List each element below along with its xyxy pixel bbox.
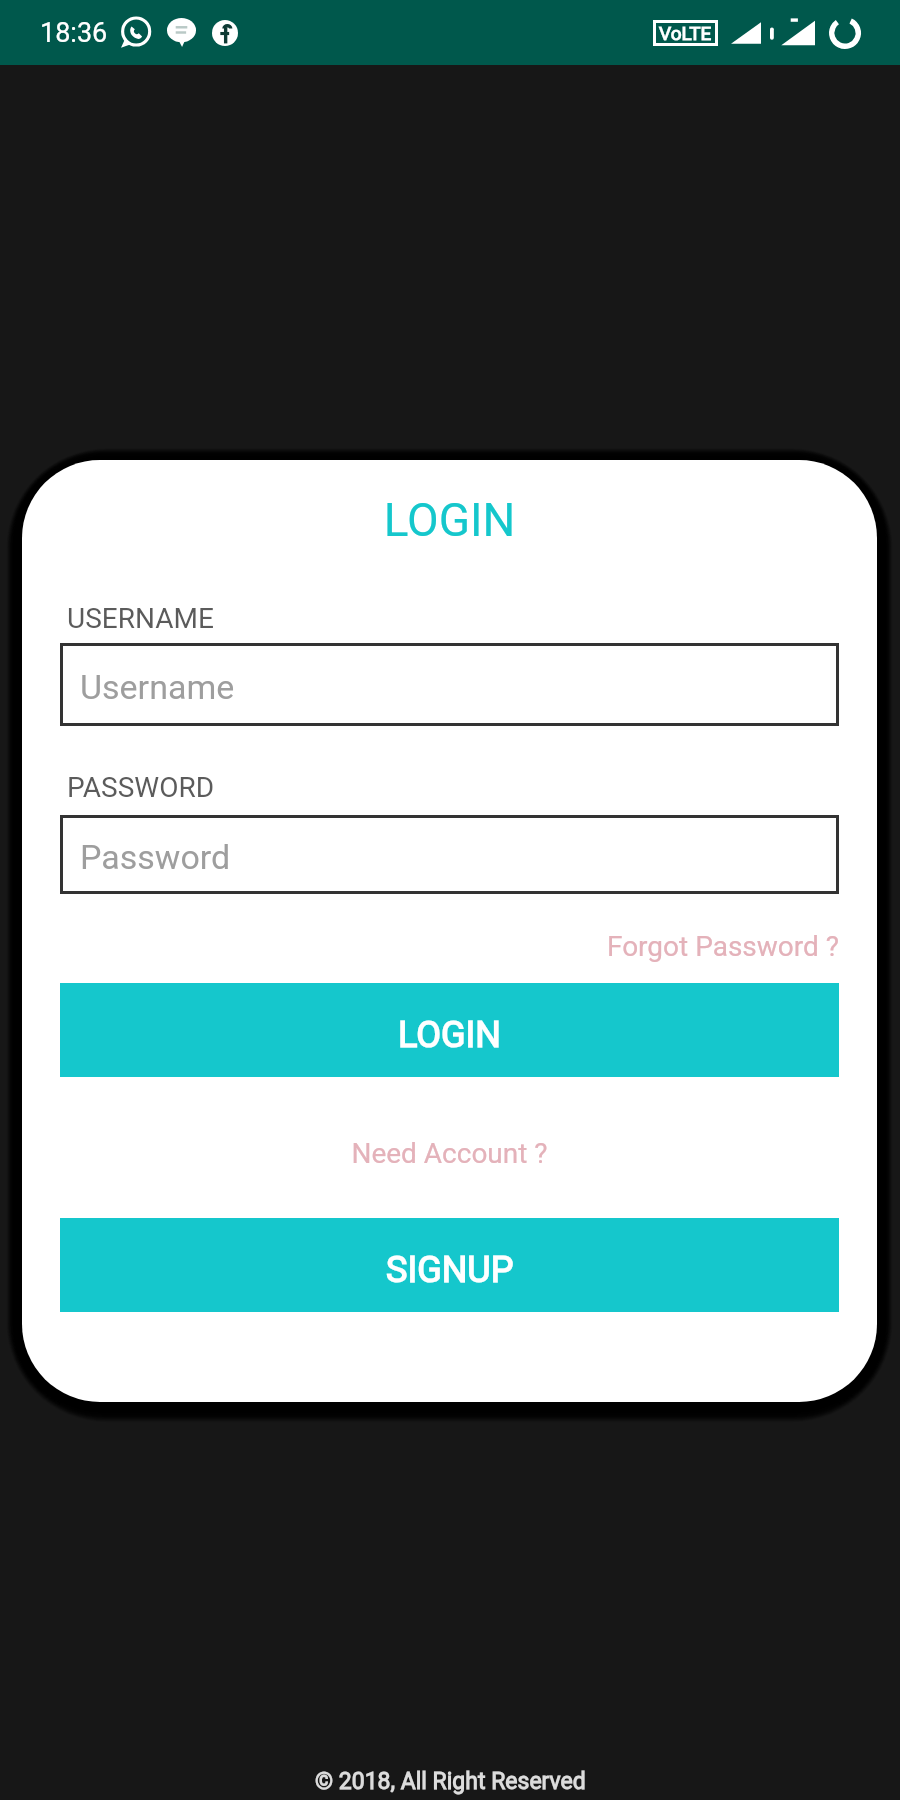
button[interactable]: Password <box>60 815 839 894</box>
button[interactable]: SIGNUP <box>60 1218 839 1312</box>
staticText: PASSWORD <box>67 771 215 804</box>
staticText: © 2018, All Right Reserved <box>315 1768 586 1795</box>
other: Facebook notification <box>212 20 238 46</box>
other: WhatsApp notification <box>119 16 152 49</box>
button[interactable]: Username <box>60 643 839 726</box>
staticText: USERNAME <box>67 602 214 635</box>
staticText: LOGIN <box>398 1014 502 1056</box>
staticText: 18:36 <box>40 17 108 49</box>
button[interactable]: Forgot Password ? <box>60 930 839 963</box>
staticText: Password <box>80 837 231 877</box>
staticText: VoLTE <box>659 22 712 44</box>
other: Mobile signal <box>731 18 761 48</box>
button[interactable]: Need Account ? <box>60 1137 839 1170</box>
staticText: LOGIN <box>60 493 839 547</box>
other: 4G mobile signal <box>770 16 815 50</box>
other: Message notification <box>167 18 196 47</box>
staticText: SIGNUP <box>386 1249 514 1291</box>
button[interactable]: LOGIN <box>60 983 839 1077</box>
staticText: Username <box>80 667 235 707</box>
other: Battery <box>829 17 861 49</box>
